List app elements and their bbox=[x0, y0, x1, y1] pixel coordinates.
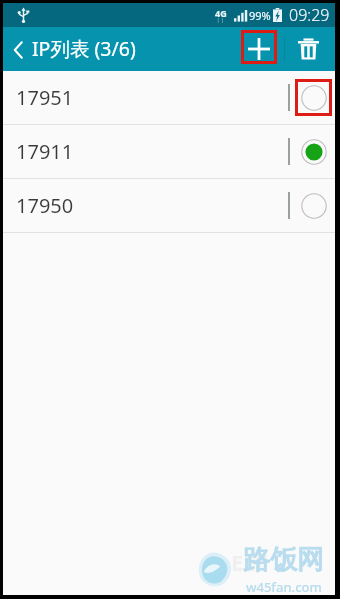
staticText: 99% bbox=[249, 8, 271, 23]
button[interactable]: Delete bbox=[292, 33, 324, 65]
staticText: 17951 bbox=[16, 84, 74, 111]
staticText: w45fan.com bbox=[246, 578, 322, 596]
staticText: 4G bbox=[215, 7, 227, 19]
button[interactable]: 17911 bbox=[3, 125, 335, 178]
button[interactable]: 17950 bbox=[3, 179, 335, 232]
staticText: 17911 bbox=[16, 138, 74, 165]
button[interactable]: IP列表 (3/6) bbox=[3, 28, 146, 71]
staticText: EEE bbox=[231, 547, 268, 577]
staticText: 09:29 bbox=[289, 4, 330, 26]
staticText: IP列表 (3/6) bbox=[32, 35, 136, 62]
staticText: 路饭网 bbox=[243, 543, 324, 577]
button[interactable]: Add bbox=[241, 30, 277, 64]
staticText: 17950 bbox=[16, 192, 74, 219]
button[interactable]: 17951 bbox=[3, 71, 335, 124]
